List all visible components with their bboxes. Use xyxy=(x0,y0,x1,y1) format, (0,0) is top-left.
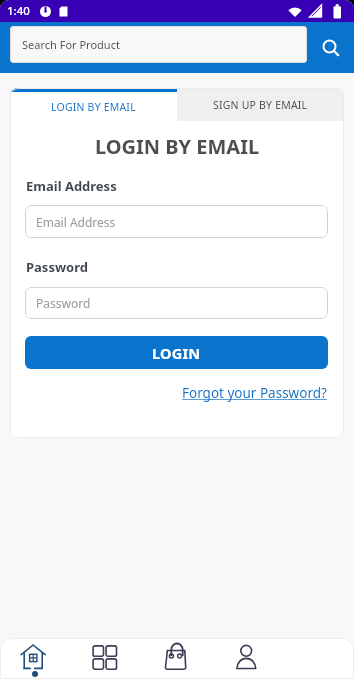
button[interactable] xyxy=(141,638,212,679)
staticText: Password xyxy=(36,295,91,311)
button[interactable]: LOGIN BY EMAIL xyxy=(10,88,177,121)
button[interactable] xyxy=(70,638,141,679)
button[interactable]: SIGN UP BY EMAIL xyxy=(177,88,344,121)
staticText: LOGIN xyxy=(152,343,201,363)
button[interactable]: Forgot your Password? xyxy=(182,384,327,402)
staticText: Password xyxy=(26,258,88,276)
button[interactable]: LOGIN xyxy=(25,336,328,369)
button[interactable]: Password xyxy=(25,287,328,319)
staticText: SIGN UP BY EMAIL xyxy=(213,98,308,112)
staticText: Search For Product xyxy=(22,37,120,52)
button[interactable] xyxy=(307,22,354,73)
button[interactable]: Search For Product xyxy=(10,26,307,63)
button[interactable]: Email Address xyxy=(25,205,328,238)
staticText: Email Address xyxy=(36,214,116,230)
staticText: LOGIN BY EMAIL xyxy=(51,100,136,114)
staticText: 1:40 xyxy=(7,3,30,19)
staticText: Email Address xyxy=(26,177,117,195)
button[interactable] xyxy=(0,638,70,679)
button[interactable] xyxy=(212,638,283,679)
staticText: LOGIN BY EMAIL xyxy=(10,133,344,160)
